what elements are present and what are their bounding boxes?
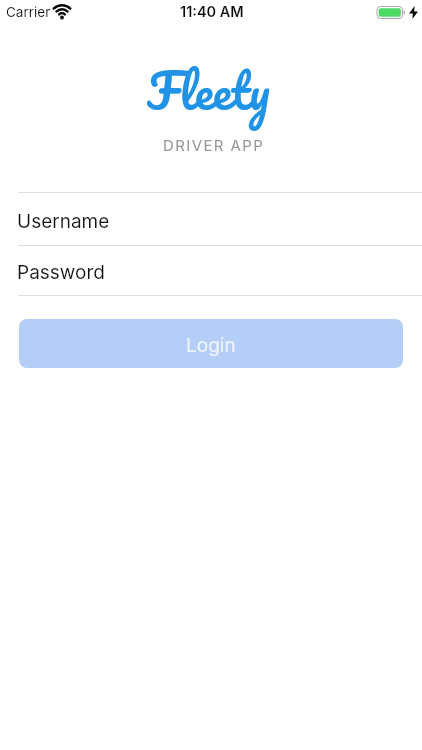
staticText: Password [17, 261, 105, 284]
button[interactable]: Password [0, 246, 422, 295]
staticText: Login [186, 334, 236, 357]
button[interactable]: Username [0, 193, 422, 245]
staticText: DRIVER APP [163, 136, 265, 154]
staticText: Carrier [6, 4, 51, 20]
staticText: Username [17, 210, 110, 233]
staticText: Fleety [147, 50, 270, 131]
button[interactable]: Login [19, 319, 403, 368]
staticText: 11:40 AM [180, 3, 244, 21]
